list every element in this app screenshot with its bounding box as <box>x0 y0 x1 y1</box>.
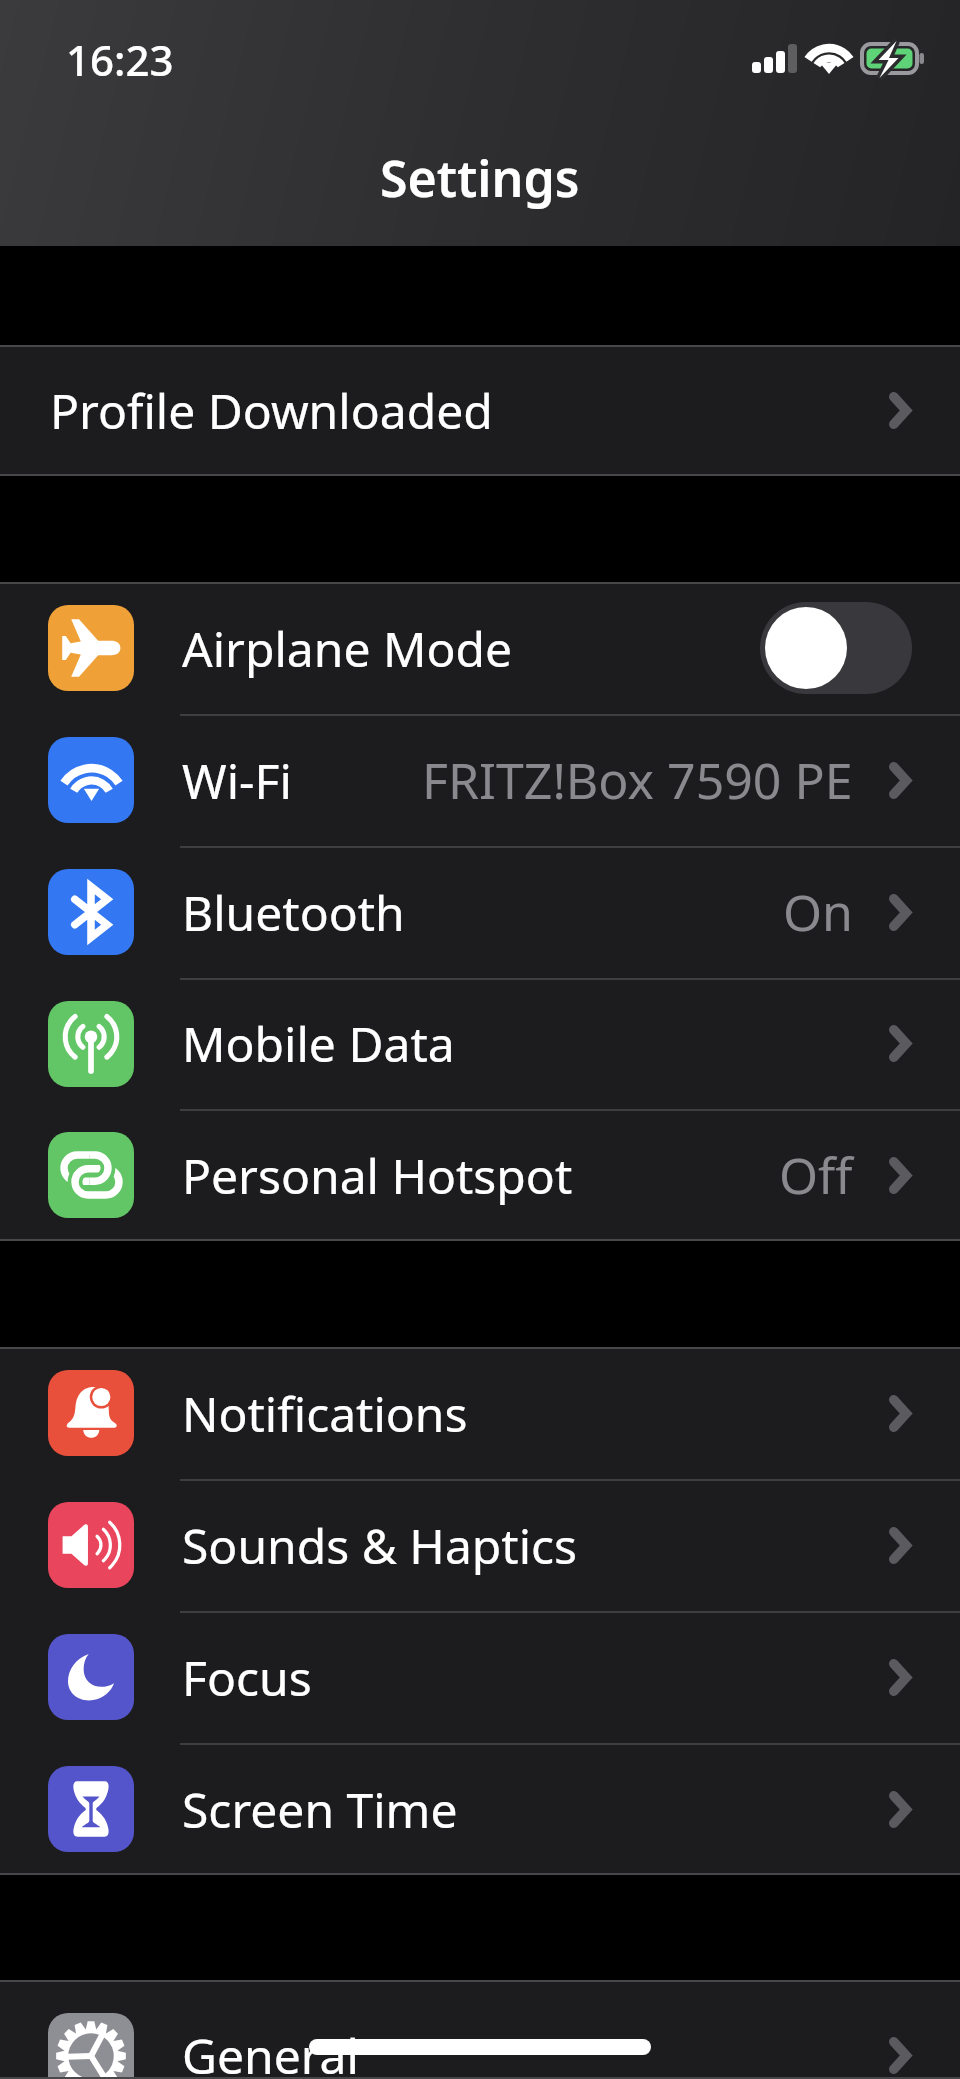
button[interactable]: Notifications <box>0 1347 960 1479</box>
button[interactable]: Focus <box>0 1611 960 1743</box>
staticText: Wi-Fi <box>182 748 292 813</box>
staticText: Focus <box>182 1645 312 1710</box>
staticText: On <box>783 878 853 946</box>
button[interactable]: General <box>0 2006 960 2079</box>
button[interactable]: Screen Time <box>0 1743 960 1875</box>
button[interactable]: Profile Downloaded <box>0 345 960 476</box>
staticText: Profile Downloaded <box>50 378 493 443</box>
staticText: Airplane Mode <box>182 616 513 681</box>
button[interactable]: Sounds & Haptics <box>0 1479 960 1611</box>
button[interactable]: Mobile Data <box>0 978 960 1109</box>
button[interactable] <box>760 602 912 694</box>
staticText: Sounds & Haptics <box>182 1513 578 1578</box>
staticText: FRITZ!Box 7590 PE <box>422 746 853 814</box>
staticText: General <box>182 2023 359 2079</box>
staticText: Screen Time <box>182 1777 458 1842</box>
button[interactable]: Bluetooth <box>0 846 960 978</box>
staticText: 16:23 <box>66 31 174 88</box>
staticText: Settings <box>380 144 580 212</box>
button[interactable]: Airplane Mode <box>0 582 960 714</box>
staticText: Personal Hotspot <box>182 1143 573 1208</box>
button[interactable]: Personal Hotspot <box>0 1109 960 1241</box>
staticText: Mobile Data <box>182 1011 455 1076</box>
button[interactable]: Wi-Fi <box>0 714 960 846</box>
staticText: Bluetooth <box>182 880 405 945</box>
staticText: Notifications <box>182 1381 468 1446</box>
staticText: Off <box>779 1141 853 1209</box>
